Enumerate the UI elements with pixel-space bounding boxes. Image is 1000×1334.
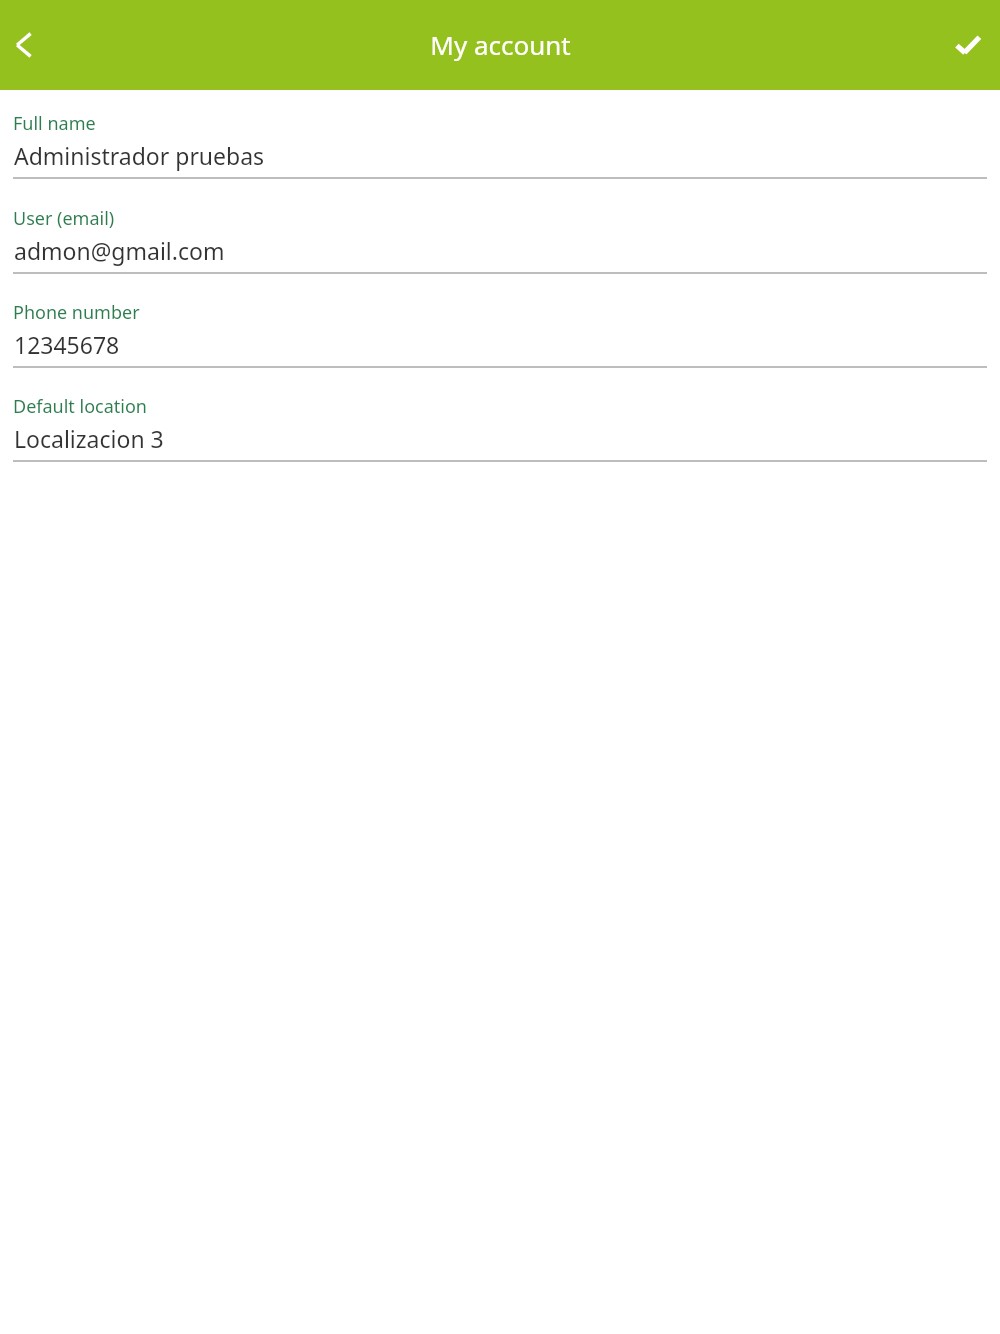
button[interactable]: Back — [2, 23, 46, 67]
staticText: 12345678 — [14, 329, 120, 360]
staticText: My account — [430, 27, 571, 62]
staticText: Default location — [13, 394, 147, 419]
staticText: Phone number — [13, 300, 140, 325]
button[interactable]: Phone number — [0, 300, 1000, 368]
staticText: Administrador pruebas — [14, 140, 265, 171]
staticText: Localizacion 3 — [14, 423, 164, 454]
staticText: Full name — [13, 111, 96, 136]
button[interactable]: Full name — [0, 111, 1000, 179]
staticText: admon@gmail.com — [14, 235, 225, 266]
staticText: User (email) — [13, 206, 115, 231]
button[interactable]: Default location — [0, 394, 1000, 462]
button[interactable]: Save — [945, 22, 991, 68]
button[interactable]: User (email) — [0, 206, 1000, 274]
